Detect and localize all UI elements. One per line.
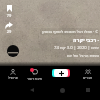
button[interactable]: חברים	[77, 67, 99, 80]
staticText: 29	[4, 29, 14, 34]
button[interactable]: Save	[3, 2, 15, 14]
staticText: תיבת דואר	[27, 76, 43, 81]
staticText: 79	[4, 13, 14, 18]
button[interactable]: Back	[28, 86, 36, 94]
button[interactable]: Share	[3, 19, 15, 31]
staticText: רכבי יקרה ·	[73, 37, 99, 44]
button[interactable]: פרופיל	[2, 67, 24, 80]
staticText: סמית הרגל של יום	[67, 53, 99, 59]
staticText: פרופיל	[8, 76, 18, 80]
button[interactable]: Recents	[84, 86, 92, 94]
staticText: 74 ימים | 2020 | 3.0 קמ	[54, 45, 99, 51]
button[interactable]: תיבת דואר	[24, 67, 46, 81]
staticText: תפלו ואל תשכחו לשתף בנוסע · C	[41, 29, 98, 34]
button[interactable]: Home	[58, 86, 66, 94]
button[interactable]: Create	[52, 68, 69, 77]
staticText: חברים	[83, 76, 93, 80]
button[interactable]: Music	[7, 45, 19, 57]
